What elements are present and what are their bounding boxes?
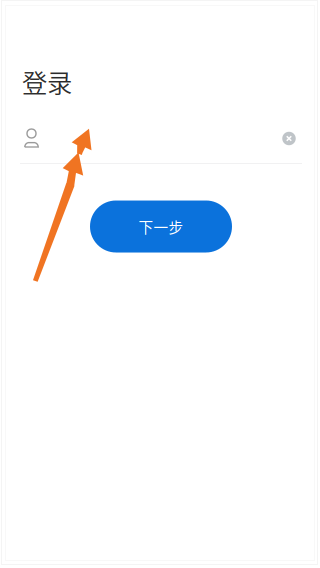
staticText: 下一步 — [138, 216, 183, 237]
button[interactable]: Username — [24, 123, 304, 153]
button[interactable]: Clear text — [274, 123, 304, 153]
staticText: 登录 — [22, 63, 72, 100]
button[interactable]: 下一步 — [90, 200, 232, 252]
